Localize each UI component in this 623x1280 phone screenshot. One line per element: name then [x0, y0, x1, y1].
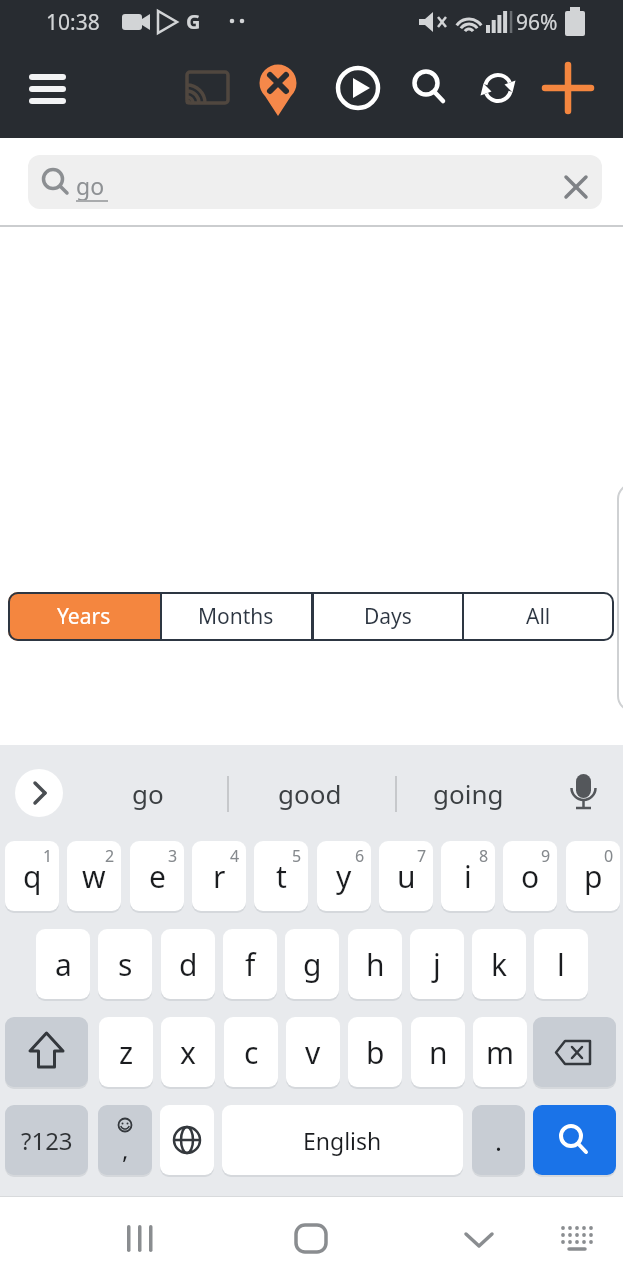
staticText: 7 [417, 845, 427, 867]
button[interactable] [5, 1017, 88, 1087]
staticText: m [486, 1032, 515, 1073]
button[interactable] [5, 841, 59, 911]
button[interactable] [533, 1017, 616, 1087]
staticText: go [132, 776, 164, 811]
button[interactable]: h [348, 929, 402, 999]
button[interactable] [552, 1214, 602, 1264]
button[interactable]: j [410, 929, 464, 999]
button[interactable] [556, 166, 596, 206]
staticText: b [366, 1032, 385, 1073]
button[interactable]: x [161, 1017, 215, 1087]
staticText: Months [198, 602, 274, 631]
button[interactable] [28, 155, 602, 209]
staticText: j [433, 944, 441, 985]
button[interactable] [566, 841, 620, 911]
staticText: 4 [230, 845, 240, 867]
staticText: c [244, 1032, 259, 1073]
staticText: z [119, 1032, 134, 1073]
button[interactable] [563, 768, 603, 818]
button[interactable] [317, 841, 371, 911]
staticText: g [303, 944, 322, 985]
button[interactable]: . [472, 1105, 525, 1175]
button[interactable]: g [285, 929, 339, 999]
staticText: i [464, 856, 472, 897]
staticText: r [213, 856, 226, 897]
button[interactable] [254, 841, 308, 911]
staticText: Years [57, 602, 111, 631]
staticText: o [521, 856, 540, 897]
button[interactable]: c [224, 1017, 278, 1087]
button[interactable] [116, 1214, 166, 1264]
button[interactable] [406, 62, 454, 110]
staticText: 8 [479, 845, 489, 867]
staticText: t [276, 856, 287, 897]
button[interactable]: v [286, 1017, 340, 1087]
staticText: 6 [355, 845, 365, 867]
button[interactable]: ?123 [5, 1105, 88, 1175]
button[interactable]: good [255, 770, 365, 817]
button[interactable] [379, 841, 433, 911]
staticText: y [336, 856, 352, 897]
button[interactable]: m [473, 1017, 527, 1087]
button[interactable]: All [463, 592, 614, 641]
staticText: s [118, 944, 133, 985]
button[interactable] [130, 841, 184, 911]
button[interactable] [533, 1105, 616, 1175]
staticText: k [491, 944, 508, 985]
button[interactable] [334, 64, 382, 112]
staticText: English [303, 1125, 382, 1156]
button[interactable] [160, 1105, 214, 1175]
staticText: 5 [292, 845, 302, 867]
staticText: 10:38 [46, 8, 100, 37]
staticText: n [429, 1032, 448, 1073]
button[interactable] [183, 66, 231, 110]
button[interactable] [286, 1214, 336, 1264]
staticText: v [305, 1032, 321, 1073]
button[interactable]: a [36, 929, 90, 999]
staticText: ?123 [21, 1124, 73, 1157]
button[interactable] [441, 841, 495, 911]
staticText: 3 [168, 845, 178, 867]
button[interactable] [192, 841, 246, 911]
staticText: x [180, 1032, 196, 1073]
staticText: Days [364, 602, 412, 631]
button[interactable] [503, 841, 557, 911]
button[interactable]: n [411, 1017, 465, 1087]
staticText: w [82, 856, 106, 897]
staticText: going [433, 776, 504, 811]
button[interactable] [544, 64, 592, 112]
button[interactable]: Days [312, 592, 463, 641]
staticText: l [557, 944, 565, 985]
button[interactable] [454, 1214, 504, 1264]
staticText: All [526, 602, 551, 631]
button[interactable]: , [98, 1105, 152, 1175]
button[interactable]: d [161, 929, 215, 999]
button[interactable] [15, 769, 63, 817]
staticText: 1 [43, 845, 53, 867]
button[interactable]: go [103, 770, 193, 817]
button[interactable]: z [99, 1017, 153, 1087]
staticText: good [278, 776, 342, 811]
button[interactable] [474, 64, 522, 112]
button[interactable]: b [348, 1017, 402, 1087]
button[interactable]: s [98, 929, 152, 999]
staticText: , [122, 1133, 129, 1166]
staticText: 2 [105, 845, 115, 867]
staticText: u [397, 856, 416, 897]
staticText: 9 [541, 845, 551, 867]
button[interactable]: Months [160, 592, 312, 641]
button[interactable]: k [472, 929, 526, 999]
staticText: f [245, 944, 256, 985]
staticText: q [23, 856, 42, 897]
button[interactable] [256, 60, 300, 118]
button[interactable]: f [223, 929, 277, 999]
button[interactable]: Years [8, 592, 160, 641]
button[interactable]: English [222, 1105, 463, 1175]
staticText: p [584, 856, 603, 897]
staticText: 96% [516, 8, 558, 37]
button[interactable]: l [534, 929, 588, 999]
button[interactable]: going [413, 770, 523, 817]
staticText: 0 [604, 845, 614, 867]
button[interactable] [67, 841, 121, 911]
button[interactable] [20, 66, 76, 112]
